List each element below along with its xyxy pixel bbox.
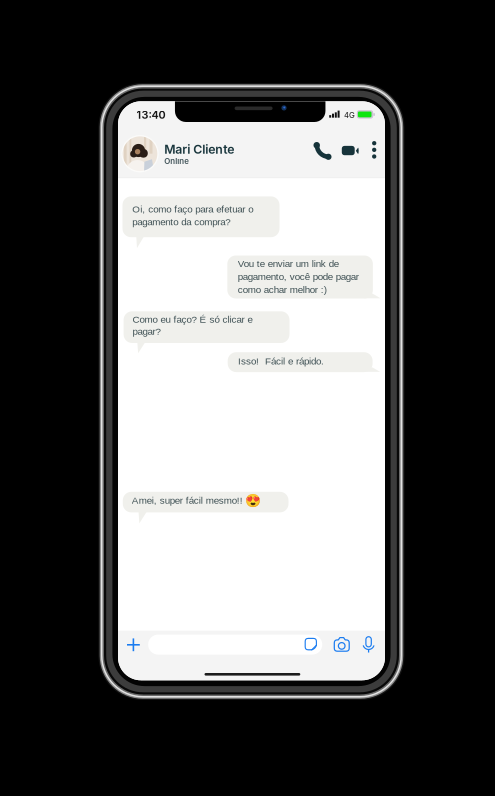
staticText: Vou te enviar um link de	[238, 258, 339, 269]
staticText: 4G	[344, 111, 355, 120]
staticText: pagamento da compra?	[132, 216, 230, 227]
staticText: Mari Cliente	[164, 142, 234, 157]
button[interactable]: More options	[118, 101, 385, 680]
staticText: Amei, super fácil mesmo!!	[132, 495, 243, 506]
staticText: 😍	[245, 493, 261, 508]
staticText: pagamento, você pode pagar	[238, 271, 359, 282]
button[interactable]: Stickers	[118, 101, 385, 680]
button[interactable]: Voice call	[118, 101, 385, 680]
staticText: 13:40	[137, 108, 166, 121]
button[interactable]: Camera	[118, 101, 385, 680]
staticText: pagar?	[133, 326, 161, 337]
button[interactable]: Attach	[118, 101, 385, 680]
staticText: Oi, como faço para efetuar o	[132, 203, 253, 214]
button[interactable]: Video call	[118, 101, 385, 680]
staticText: como achar melhor :)	[238, 284, 327, 295]
staticText: Como eu faço? É só clicar e	[133, 314, 253, 325]
staticText: Isso! Fácil e rápido.	[238, 356, 324, 367]
staticText: Online	[164, 156, 189, 166]
button[interactable]: Voice message	[118, 101, 385, 680]
